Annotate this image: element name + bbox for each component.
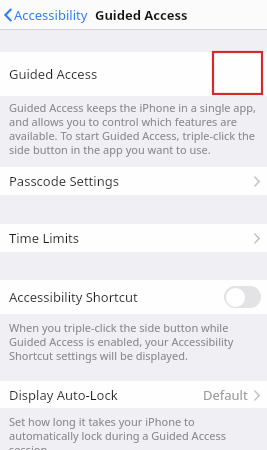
staticText: Guided Access keeps the iPhone in a sing… [9, 100, 259, 157]
staticText: Passcode Settings [9, 172, 119, 190]
staticText: Accessibility Shortcut [9, 288, 138, 306]
staticText: Default [203, 386, 248, 404]
button[interactable]: Guided Access [0, 52, 267, 96]
staticText: Guided Access [9, 65, 98, 83]
button[interactable]: Accessibility Shortcut [0, 280, 267, 314]
button[interactable]: Accessibility [3, 6, 188, 24]
staticText: Guided Access [95, 6, 188, 24]
button[interactable]: Passcode Settings [0, 167, 267, 195]
staticText: Time Limits [9, 229, 80, 247]
staticText: Set how long it takes your iPhone to aut… [9, 414, 259, 450]
button[interactable]: Display Auto-Lock [0, 381, 267, 408]
button[interactable]: Accessibility Shortcut toggle, off [224, 286, 261, 308]
staticText: When you triple-click the side button wh… [9, 320, 259, 363]
button[interactable]: Time Limits [0, 224, 267, 252]
staticText: Accessibility [14, 6, 88, 24]
staticText: Display Auto-Lock [9, 386, 118, 404]
